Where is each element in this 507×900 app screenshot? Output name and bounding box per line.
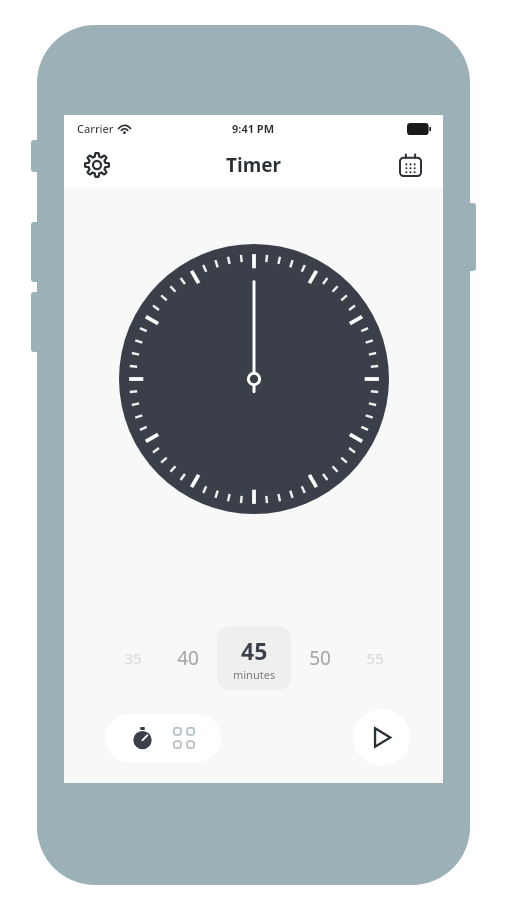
staticText: 55 [366, 648, 384, 668]
button[interactable]: Start [353, 709, 410, 766]
button[interactable]: 40 [159, 626, 217, 690]
button[interactable]: 45 [217, 626, 291, 690]
button[interactable]: 55 [349, 626, 401, 690]
button[interactable]: 35 [107, 626, 159, 690]
staticText: minutes [233, 667, 276, 682]
staticText: 50 [309, 645, 331, 671]
staticText: 35 [124, 648, 142, 668]
button[interactable]: Settings [77, 145, 117, 185]
button[interactable]: 50 [291, 626, 349, 690]
staticText: 40 [177, 645, 199, 671]
button[interactable]: Stopwatch [121, 717, 163, 759]
staticText: 9:41 PM [232, 121, 275, 136]
staticText: 45 [241, 635, 268, 666]
button[interactable]: Calendar [390, 145, 430, 185]
staticText: Timer [226, 152, 282, 178]
button[interactable]: Presets [163, 717, 205, 759]
staticText: Carrier [77, 121, 114, 136]
